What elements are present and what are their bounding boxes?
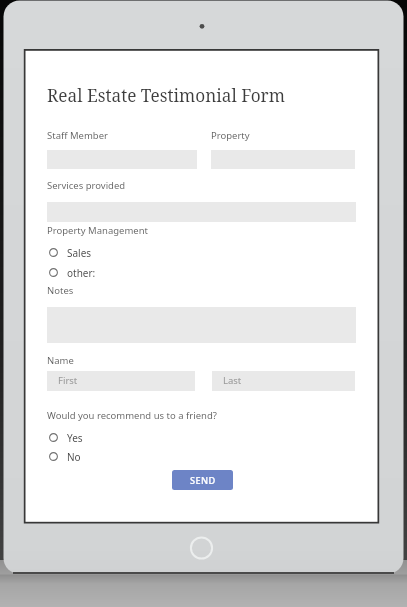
staticText: Property bbox=[211, 129, 250, 142]
button[interactable] bbox=[212, 371, 355, 391]
staticText: Would you recommend us to a friend? bbox=[47, 409, 217, 422]
button[interactable] bbox=[47, 371, 195, 391]
button[interactable]: SEND bbox=[172, 470, 233, 490]
staticText: Sales bbox=[67, 246, 92, 258]
staticText: SEND bbox=[190, 474, 216, 487]
button[interactable]: other: bbox=[49, 266, 96, 278]
staticText: Real Estate Testimonial Form bbox=[47, 84, 285, 107]
staticText: Name bbox=[47, 354, 74, 367]
staticText: Property Management bbox=[47, 224, 148, 237]
staticText: Yes bbox=[67, 431, 83, 443]
staticText: Services provided bbox=[47, 179, 126, 192]
staticText: Staff Member bbox=[47, 129, 108, 142]
staticText: First bbox=[58, 374, 78, 387]
staticText: No bbox=[67, 450, 81, 462]
button[interactable]: No bbox=[49, 450, 81, 462]
staticText: Notes bbox=[47, 284, 74, 297]
staticText: Last bbox=[223, 374, 242, 387]
button[interactable]: Sales bbox=[49, 246, 92, 258]
staticText: other: bbox=[67, 266, 96, 278]
button[interactable]: Yes bbox=[49, 431, 83, 443]
